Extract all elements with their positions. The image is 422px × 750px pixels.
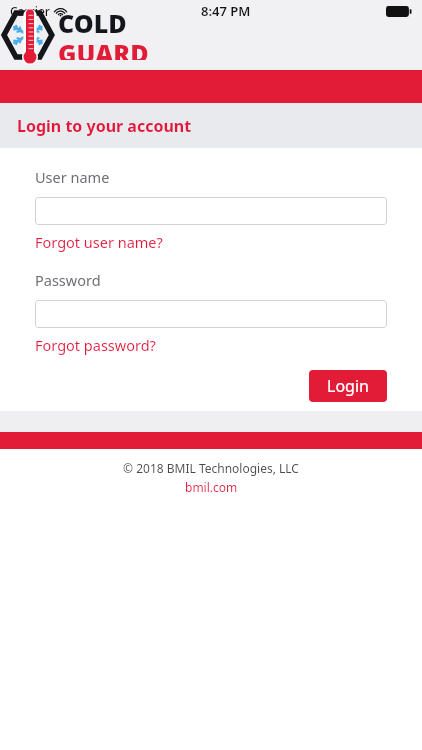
button[interactable] [35, 300, 387, 328]
staticText: COLD [58, 6, 127, 40]
staticText: GUARD [58, 36, 149, 60]
button[interactable] [35, 197, 387, 225]
staticText: Forgot user name? [35, 232, 163, 252]
staticText: 8:47 PM [201, 2, 251, 20]
button[interactable]: Login [309, 370, 387, 402]
button[interactable]: Forgot user name? [35, 232, 163, 252]
staticText: Carrier [10, 3, 50, 19]
staticText: Password [35, 270, 101, 290]
button[interactable]: Forgot password? [35, 335, 156, 355]
staticText: Forgot password? [35, 335, 156, 355]
other: Battery [386, 6, 412, 17]
other: Cold Guard logo [4, 6, 56, 64]
button[interactable]: bmil.com [185, 479, 238, 495]
staticText: Login to your account [17, 115, 192, 137]
staticText: © 2018 BMIL Technologies, LLC [123, 460, 299, 476]
staticText: User name [35, 167, 110, 187]
other: Wi-Fi [54, 6, 67, 17]
staticText: Login [327, 375, 369, 397]
staticText: bmil.com [185, 479, 238, 495]
